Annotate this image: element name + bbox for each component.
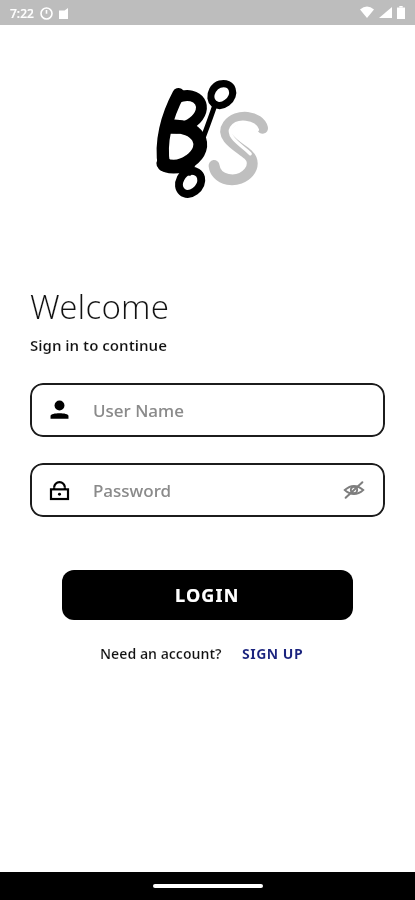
staticText: Welcome xyxy=(30,284,170,329)
staticText: User Name xyxy=(93,399,367,422)
staticText: 7:22 xyxy=(10,5,34,21)
button[interactable]: Password xyxy=(30,463,385,517)
staticText: Password xyxy=(93,479,341,502)
staticText: LOGIN xyxy=(175,583,240,608)
button[interactable]: SIGN UP xyxy=(230,634,316,673)
button[interactable]: User Name xyxy=(30,383,385,437)
button[interactable]: Show password xyxy=(341,477,367,503)
staticText: SIGN UP xyxy=(242,644,304,663)
button[interactable]: LOGIN xyxy=(62,570,353,620)
staticText: Need an account? xyxy=(100,644,222,663)
staticText: Sign in to continue xyxy=(30,335,167,355)
